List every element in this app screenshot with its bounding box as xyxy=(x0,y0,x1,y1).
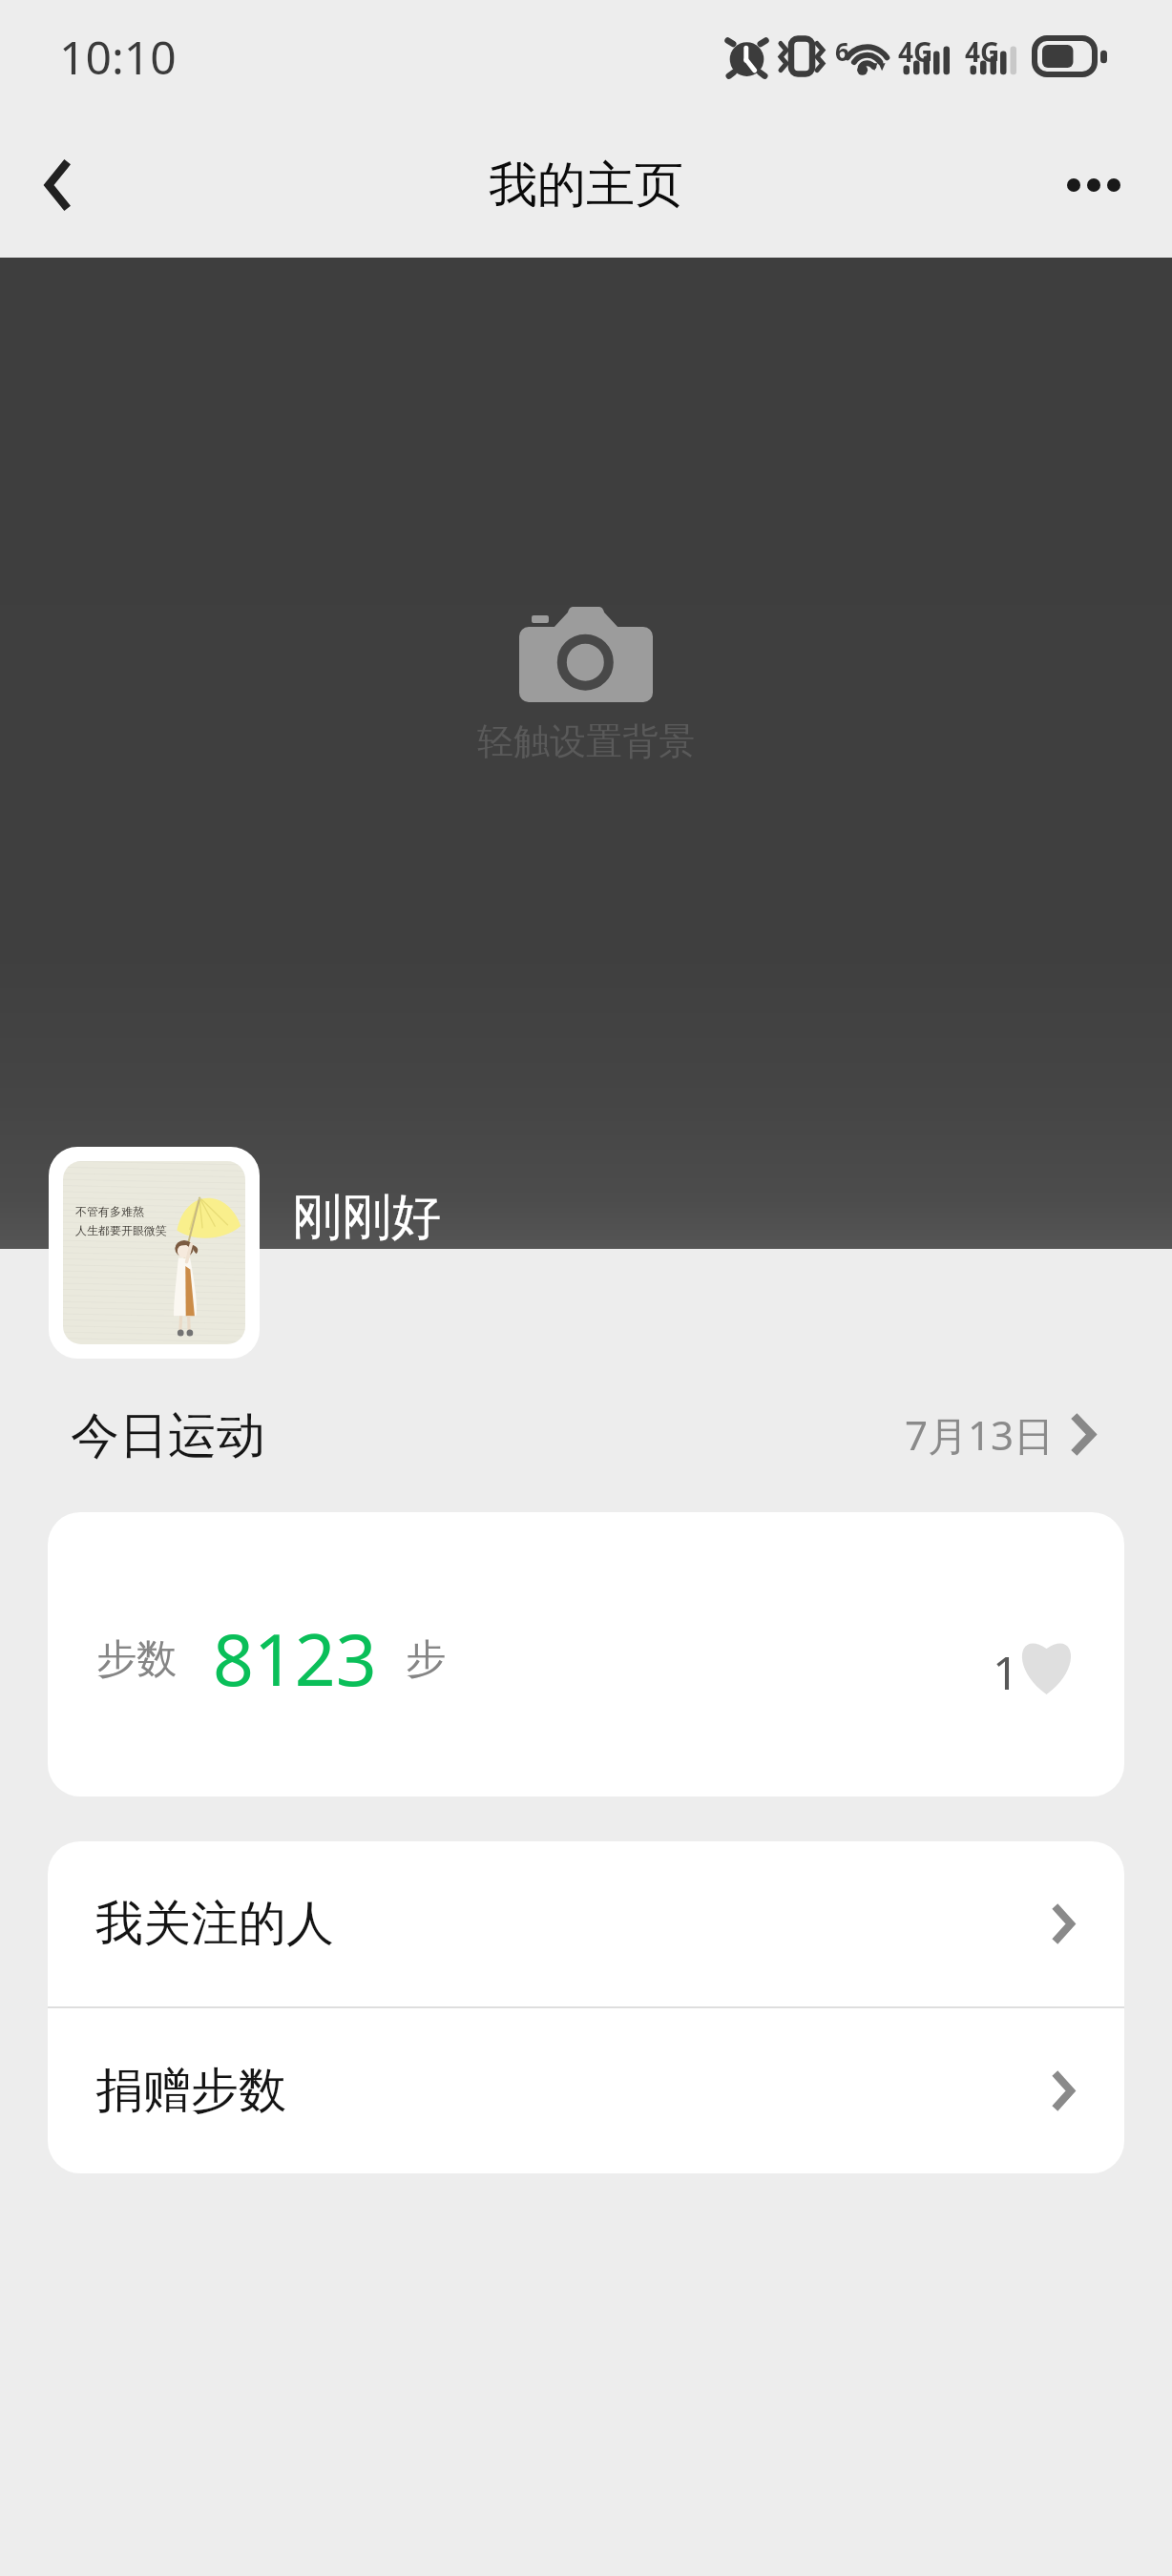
staticText: 捐赠步数 xyxy=(95,2061,286,2121)
staticText: 人生都要开眼微笑 xyxy=(75,1223,167,1237)
staticText: 7月13日 xyxy=(905,1407,1055,1462)
button[interactable]: 步数 xyxy=(48,1512,1124,1797)
staticText: 4G xyxy=(965,33,1000,70)
staticText: 步数 xyxy=(96,1634,177,1685)
button[interactable]: 今日运动 xyxy=(71,1405,1096,1463)
staticText: 轻触设置背景 xyxy=(477,718,695,764)
staticText: 1 xyxy=(993,1641,1019,1703)
staticText: 10:10 xyxy=(59,26,177,88)
button[interactable]: Profile photo xyxy=(63,1161,245,1344)
staticText: 6 xyxy=(835,34,849,68)
button[interactable]: More options xyxy=(1019,122,1172,248)
staticText: 今日运动 xyxy=(71,1405,265,1463)
staticText: 4G xyxy=(898,33,933,70)
staticText: 我的主页 xyxy=(489,155,683,216)
staticText: 我关注的人 xyxy=(95,1894,334,1954)
button[interactable]: 捐赠步数 xyxy=(48,2008,1124,2173)
staticText: 步 xyxy=(406,1634,446,1685)
button[interactable]: Back xyxy=(0,122,118,248)
staticText: 不管有多难熬 xyxy=(75,1204,144,1218)
button[interactable]: 我关注的人 xyxy=(48,1841,1124,2006)
staticText: 刚刚好 xyxy=(292,1186,441,1249)
button[interactable]: Set background image xyxy=(0,258,1172,1249)
staticText: 8123 xyxy=(213,1610,377,1707)
